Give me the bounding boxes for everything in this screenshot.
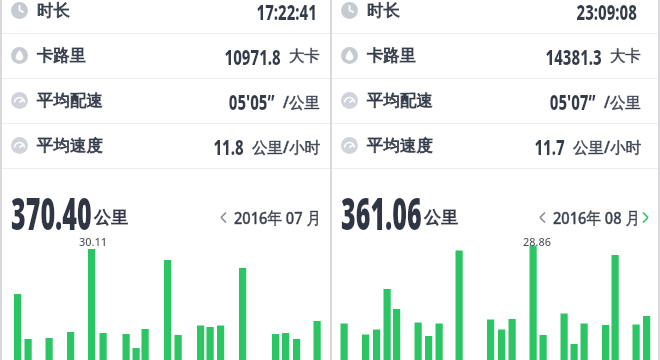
staticText: 大卡 [289,46,320,66]
staticText: /公里 [604,91,641,112]
staticText: 时长 [37,0,70,21]
staticText: 28.86 [523,234,552,249]
staticText: 361.06 [341,183,422,243]
staticText: 时长 [367,0,400,21]
staticText: 公里/小时 [252,136,320,157]
staticText: 平均速度 [37,135,103,156]
staticText: 卡路里 [37,45,87,66]
button[interactable]: 卡路里 [0,33,330,78]
button[interactable]: 平均速度 [0,123,330,168]
staticText: 2016年 07 月 [234,206,322,229]
staticText: 10971.8 [225,41,281,71]
staticText: 公里 [424,207,458,228]
staticText: 公里 [424,207,458,228]
staticText: 2016年 08 月 [553,206,641,229]
staticText: 平均配速 [37,90,103,111]
button[interactable]: 时长 [0,0,330,33]
button[interactable]: 时长 [330,0,660,33]
button[interactable]: 平均配速 [330,78,660,123]
staticText: 大卡 [610,46,641,66]
staticText: 平均速度 [367,135,433,156]
staticText: 卡路里 [367,45,417,66]
button[interactable]: 2016年 08 月 [533,205,660,231]
staticText: 公里/小时 [252,136,320,157]
staticText: 公里/小时 [573,136,641,157]
staticText: 14381.3 [546,41,602,71]
staticText: 平均配速 [37,90,103,111]
staticText: 370.40 [11,183,92,243]
staticText: 23:09:08 [576,0,637,26]
staticText: 平均速度 [37,135,103,156]
staticText: 30.11 [79,234,108,249]
staticText: 公里/小时 [573,136,641,157]
staticText: 平均配速 [367,90,433,111]
staticText: 11.7 [534,131,565,161]
staticText: 卡路里 [367,45,417,66]
staticText: /公里 [283,91,320,112]
staticText: 公里 [94,207,128,228]
staticText: /公里 [283,91,320,112]
staticText: 11.8 [213,131,244,161]
staticText: 平均速度 [367,135,433,156]
staticText: 大卡 [289,46,320,66]
staticText: 05'05” [229,86,275,116]
staticText: 公里 [94,207,128,228]
button[interactable]: 平均配速 [0,78,330,123]
staticText: 大卡 [610,46,641,66]
staticText: 17:22:41 [256,0,317,26]
staticText: 平均配速 [367,90,433,111]
staticText: 时长 [367,0,400,21]
staticText: 2016年 07 月 [234,206,322,229]
staticText: 2016年 08 月 [553,206,641,229]
staticText: 时长 [37,0,70,21]
staticText: /公里 [604,91,641,112]
staticText: 05'07” [550,86,596,116]
button[interactable]: 卡路里 [330,33,660,78]
button[interactable]: 平均速度 [330,123,660,168]
button[interactable]: 2016年 07 月 [214,205,330,231]
staticText: 卡路里 [37,45,87,66]
